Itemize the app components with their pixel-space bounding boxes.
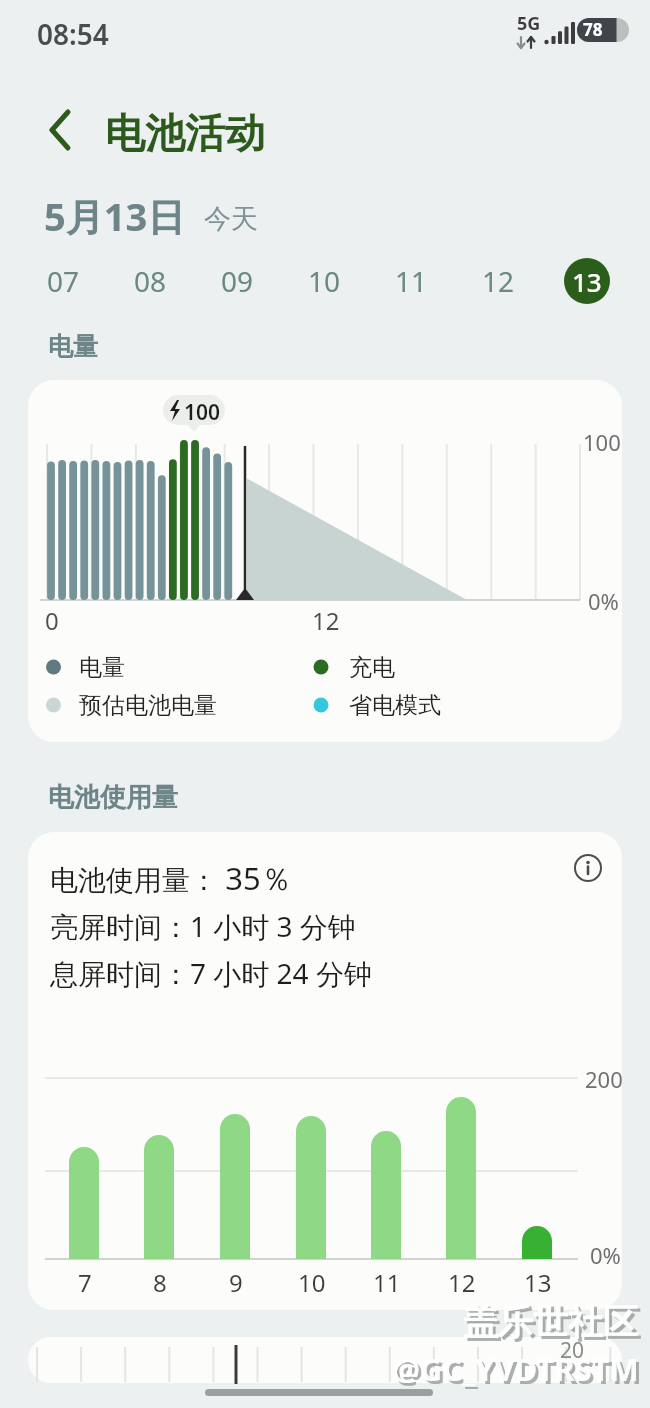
staticText: 0 [45, 604, 59, 637]
staticText: 10 [308, 262, 341, 300]
staticText: 78 [583, 18, 603, 41]
button[interactable] [36, 104, 88, 156]
staticText: 20 [560, 1336, 585, 1365]
staticText: 12 [312, 604, 340, 637]
staticText: 电池使用量： 35％ [50, 857, 292, 899]
staticText: 100 [184, 398, 221, 427]
staticText: 今天 [204, 202, 258, 236]
button[interactable]: 13 [564, 258, 610, 304]
staticText: 省电模式 [349, 691, 441, 720]
staticText: 9 [229, 1266, 243, 1299]
staticText: 12 [448, 1266, 476, 1299]
staticText: 08:54 [37, 15, 109, 53]
staticText: 7 [78, 1266, 92, 1299]
staticText: 电量 [48, 331, 98, 362]
staticText: 100 [583, 427, 621, 457]
staticText: 12 [482, 262, 515, 300]
staticText: 亮屏时间：1 小时 3 分钟 [50, 907, 356, 945]
staticText: 07 [47, 262, 80, 300]
staticText: 电池活动 [105, 108, 265, 158]
staticText: 11 [395, 262, 428, 300]
staticText: @GC_YVDTRSTM [392, 1348, 639, 1390]
staticText: 盖乐世社区 [463, 1300, 638, 1344]
staticText: 充电 [349, 653, 395, 682]
button[interactable]: 07 [33, 251, 93, 311]
staticText: 预估电池电量 [79, 691, 217, 720]
button[interactable]: 09 [207, 251, 267, 311]
staticText: 10 [298, 1266, 326, 1299]
staticText: 息屏时间：7 小时 24 分钟 [50, 954, 372, 992]
button[interactable]: 08 [120, 251, 180, 311]
staticText: 11 [373, 1266, 401, 1299]
staticText: 5G [517, 11, 541, 36]
staticText: @GC_YVDTRSTM [395, 1351, 642, 1393]
button[interactable]: 12 [468, 251, 528, 311]
staticText: 5月13日 [44, 190, 186, 242]
staticText: 8 [153, 1266, 167, 1299]
staticText: 电量 [79, 653, 125, 682]
button[interactable] [566, 846, 610, 890]
staticText: 09 [221, 262, 254, 300]
staticText: 电池使用量 [48, 781, 178, 814]
staticText: 200 [585, 1064, 623, 1094]
staticText: 0% [588, 586, 619, 616]
staticText: 13 [572, 264, 602, 299]
staticText: 盖乐世社区 [466, 1303, 641, 1347]
staticText: 13 [524, 1266, 552, 1299]
button[interactable]: 11 [381, 251, 441, 311]
staticText: 08 [134, 262, 167, 300]
staticText: 0% [590, 1240, 621, 1270]
button[interactable]: 10 [294, 251, 354, 311]
